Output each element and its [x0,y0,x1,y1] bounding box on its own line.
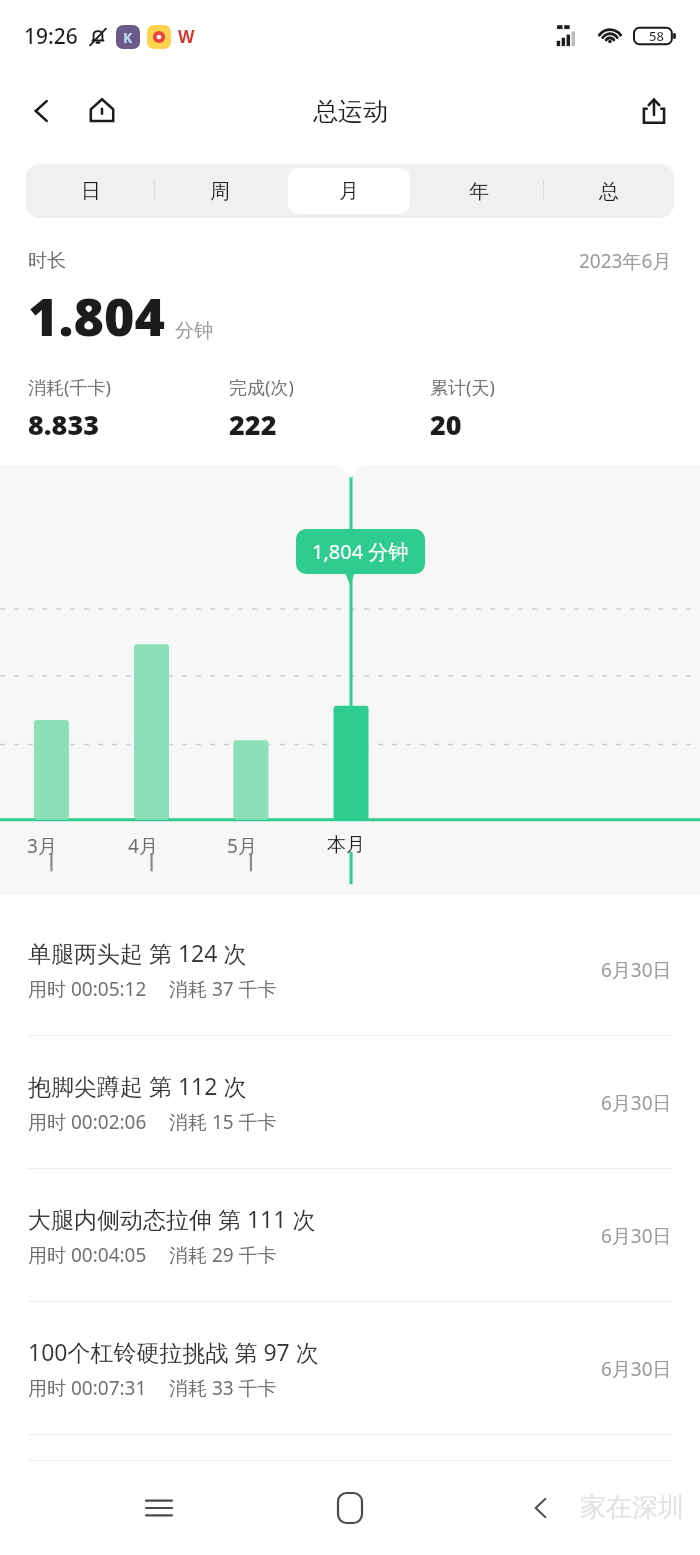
staticText: 4月 [128,833,158,859]
staticText: 19:26 [24,22,78,51]
staticText: 消耗(千卡) [28,375,111,400]
staticText: 用时 00:02:06 [28,1109,147,1135]
staticText: 周 [210,179,230,204]
button[interactable]: Home [76,85,128,137]
staticText: 6月30日 [601,1356,672,1382]
staticText: 总运动 [313,96,388,127]
button[interactable]: 大腿内侧动态拉伸 第 111 次 [0,1169,700,1302]
staticText: 抱脚尖蹲起 第 112 次 [28,1070,247,1101]
staticText: 用时 00:04:05 [28,1242,147,1268]
button[interactable]: 100个杠铃硬拉挑战 第 97 次 [0,1302,700,1435]
button[interactable]: Back [16,85,68,137]
staticText: K [123,28,133,47]
staticText: 累计(天) [430,375,495,400]
staticText: 年 [469,179,489,204]
staticText: 时长 [28,249,66,273]
button[interactable]: 月 [288,168,410,214]
staticText: 完成(次) [229,375,294,400]
staticText: 用时 00:05:12 [28,976,147,1002]
button[interactable]: Share [628,85,680,137]
staticText: 月 [339,179,359,204]
staticText: 3月 [27,833,57,859]
button[interactable]: 周 [159,168,280,214]
button[interactable]: 总 [548,168,670,214]
button[interactable]: Home [318,1476,382,1540]
staticText: 总 [599,179,619,204]
staticText: 6月30日 [601,1090,672,1116]
staticText: 用时 00:07:31 [28,1375,147,1401]
button[interactable]: 单腿两头起 第 124 次 [0,903,700,1036]
button[interactable]: 抱脚尖蹲起 第 112 次 [0,1036,700,1169]
staticText: 家在深圳 [580,1491,684,1524]
staticText: 6月30日 [601,957,672,983]
staticText: 单腿两头起 第 124 次 [28,937,247,968]
staticText: 5月 [227,833,257,859]
staticText: 消耗 29 千卡 [169,1242,277,1268]
button[interactable]: Back [509,1476,573,1540]
staticText: 8.833 [28,406,100,443]
staticText: 222 [229,406,277,443]
staticText: 消耗 15 千卡 [169,1109,277,1135]
staticText: 6月30日 [601,1223,672,1249]
staticText: W [178,25,195,48]
button[interactable]: Recent apps [127,1476,191,1540]
staticText: 1,804 分钟 [312,538,409,565]
button[interactable]: 日 [30,168,151,214]
staticText: 20 [430,406,462,443]
staticText: 消耗 33 千卡 [169,1375,277,1401]
staticText: 58 [649,27,664,45]
staticText: 2023年6月 [579,248,672,274]
staticText: 1.804 [28,280,165,351]
staticText: 日 [81,179,101,204]
button[interactable]: 年 [418,168,540,214]
staticText: 大腿内侧动态拉伸 第 111 次 [28,1203,316,1234]
staticText: 分钟 [175,319,213,343]
staticText: 本月 [327,833,365,857]
staticText: 100个杠铃硬拉挑战 第 97 次 [28,1336,319,1367]
staticText: 消耗 37 千卡 [169,976,277,1002]
